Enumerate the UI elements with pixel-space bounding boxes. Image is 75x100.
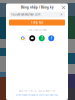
button[interactable]: Điều khoản sử dụng và Chính sách bảo mật xyxy=(16,93,58,96)
button[interactable]: Continue with Zalo xyxy=(39,35,45,41)
staticText: Đăng nhập / Đăng ký xyxy=(21,6,53,9)
button[interactable]: Close xyxy=(60,4,66,10)
button[interactable]: Tiếp Tục xyxy=(9,19,65,25)
staticText: Tiếp Tục xyxy=(31,21,43,24)
staticText: Điều khoản sử dụng và Chính sách bảo mật xyxy=(16,93,58,96)
staticText: Bằng việc tiếp tục, bạn đã đồng ý với xyxy=(18,89,55,92)
button[interactable]: Continue with Google xyxy=(20,35,26,41)
staticText: Hoặc tiếp tục bằng xyxy=(27,28,46,31)
button[interactable]: Continue with Apple xyxy=(29,35,35,41)
staticText: f xyxy=(51,36,52,40)
staticText: Z xyxy=(41,36,42,40)
staticText: nguyenvan@gmail.com xyxy=(11,13,40,16)
button[interactable]: Continue with Facebook xyxy=(48,35,54,41)
button[interactable]: nguyenvan@gmail.com xyxy=(9,11,65,17)
